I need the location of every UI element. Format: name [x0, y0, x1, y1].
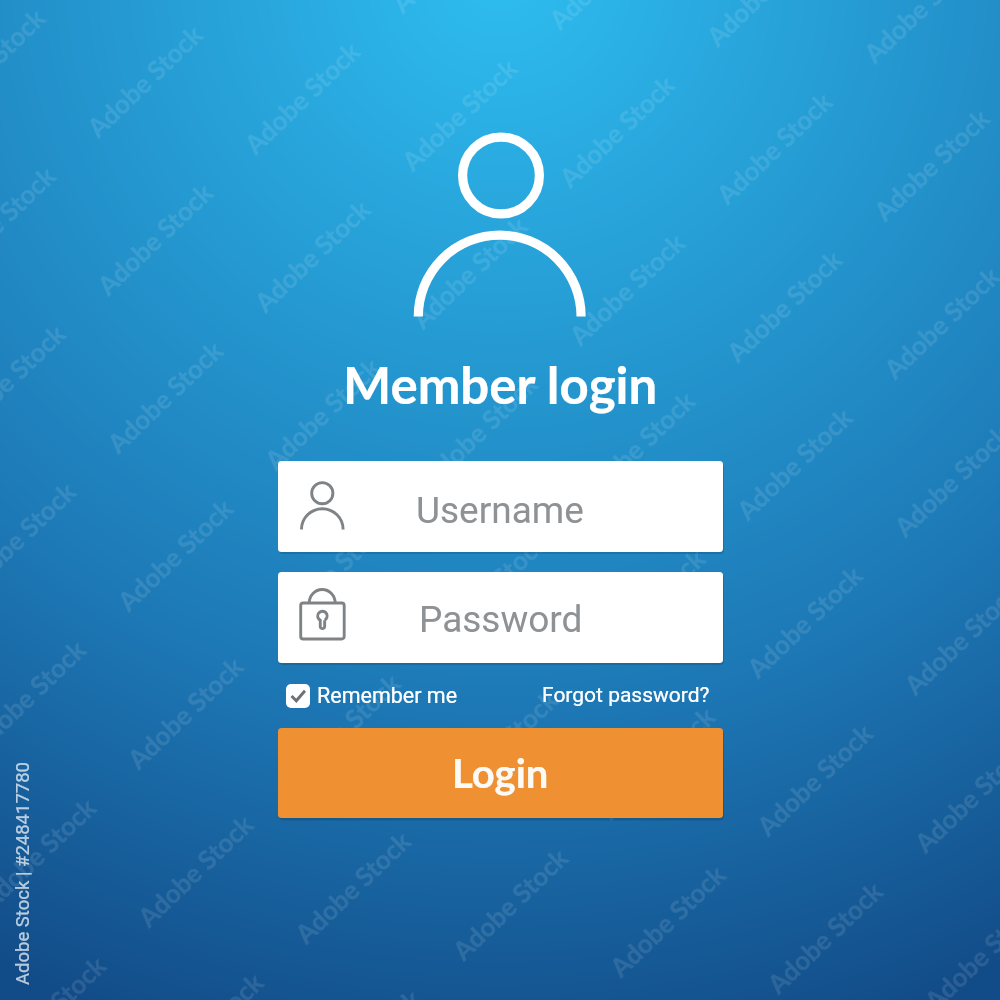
staticText: Username [416, 489, 584, 532]
staticText: Login [452, 749, 549, 797]
staticText: Remember me [317, 683, 458, 708]
staticText: Member login [343, 354, 658, 415]
button[interactable]: Password [278, 572, 723, 663]
button[interactable]: Login [278, 728, 723, 818]
staticText: Password [419, 598, 583, 641]
staticText: Forgot password? [542, 683, 710, 708]
button[interactable]: Forgot password? [542, 683, 710, 708]
button[interactable]: Remember me [286, 683, 458, 708]
button[interactable]: Username [278, 461, 723, 552]
other: User avatar [413, 131, 587, 321]
